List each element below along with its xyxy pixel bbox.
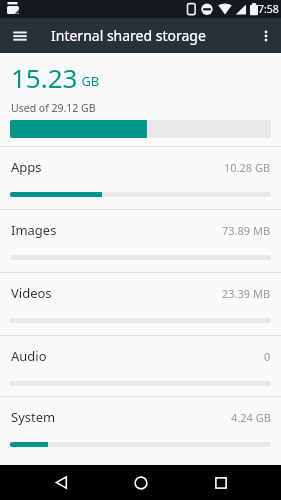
staticText: System [11, 408, 56, 426]
button[interactable] [101, 465, 181, 500]
staticText: 10.28 GB [224, 160, 271, 175]
staticText: 0 [264, 349, 271, 364]
button[interactable]: Audio [0, 335, 281, 396]
staticText: 23.39 MB [222, 286, 271, 301]
staticText: GB [78, 72, 100, 90]
button[interactable]: Videos [0, 272, 281, 335]
staticText: Internal shared storage [51, 26, 206, 45]
staticText: 73.89 MB [222, 223, 271, 238]
staticText: Apps [11, 158, 42, 176]
staticText: 4.24 GB [231, 410, 271, 425]
button[interactable]: Apps [0, 146, 281, 209]
button[interactable] [257, 27, 275, 45]
staticText: Videos [11, 284, 52, 302]
staticText: Images [11, 221, 57, 239]
staticText: 15.23 [11, 60, 78, 95]
button[interactable]: Images [0, 209, 281, 272]
button[interactable] [181, 465, 261, 500]
staticText: 7:58 [258, 2, 279, 16]
staticText: Audio [11, 347, 47, 365]
button[interactable] [10, 26, 30, 46]
staticText: Used of 29.12 GB [11, 101, 96, 115]
button[interactable]: System [0, 396, 281, 459]
button[interactable] [21, 465, 101, 500]
